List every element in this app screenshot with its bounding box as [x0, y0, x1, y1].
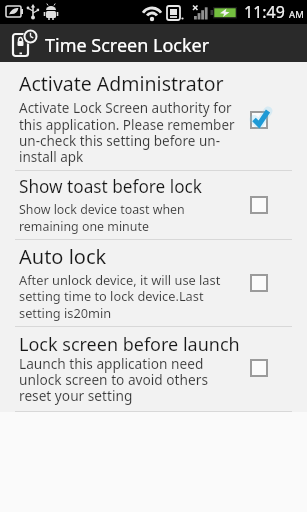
staticText: Auto lock — [19, 243, 107, 270]
button[interactable] — [248, 270, 274, 296]
button[interactable]: Auto lock — [0, 240, 307, 326]
staticText: Show lock device toast when remaining on… — [19, 201, 185, 235]
button[interactable] — [248, 355, 274, 381]
button[interactable]: Time Screen Locker — [0, 24, 307, 62]
staticText: Activate Administrator — [19, 70, 224, 97]
button[interactable] — [248, 107, 274, 133]
button[interactable]: Lock screen before launch — [0, 327, 307, 411]
staticText: Time Screen Locker — [45, 33, 210, 58]
staticText: After unlock device, it will use last se… — [19, 271, 221, 322]
staticText: Launch this application need unlock scre… — [19, 354, 208, 405]
button[interactable]: Show toast before lock — [0, 171, 307, 239]
button[interactable]: Activate Administrator — [0, 62, 307, 170]
staticText: Activate Lock Screen authority for this … — [19, 99, 235, 166]
staticText: 11:49 AM — [244, 1, 304, 23]
button[interactable] — [248, 192, 274, 218]
staticText: Lock screen before launch — [19, 332, 240, 357]
staticText: Show toast before lock — [19, 175, 202, 198]
